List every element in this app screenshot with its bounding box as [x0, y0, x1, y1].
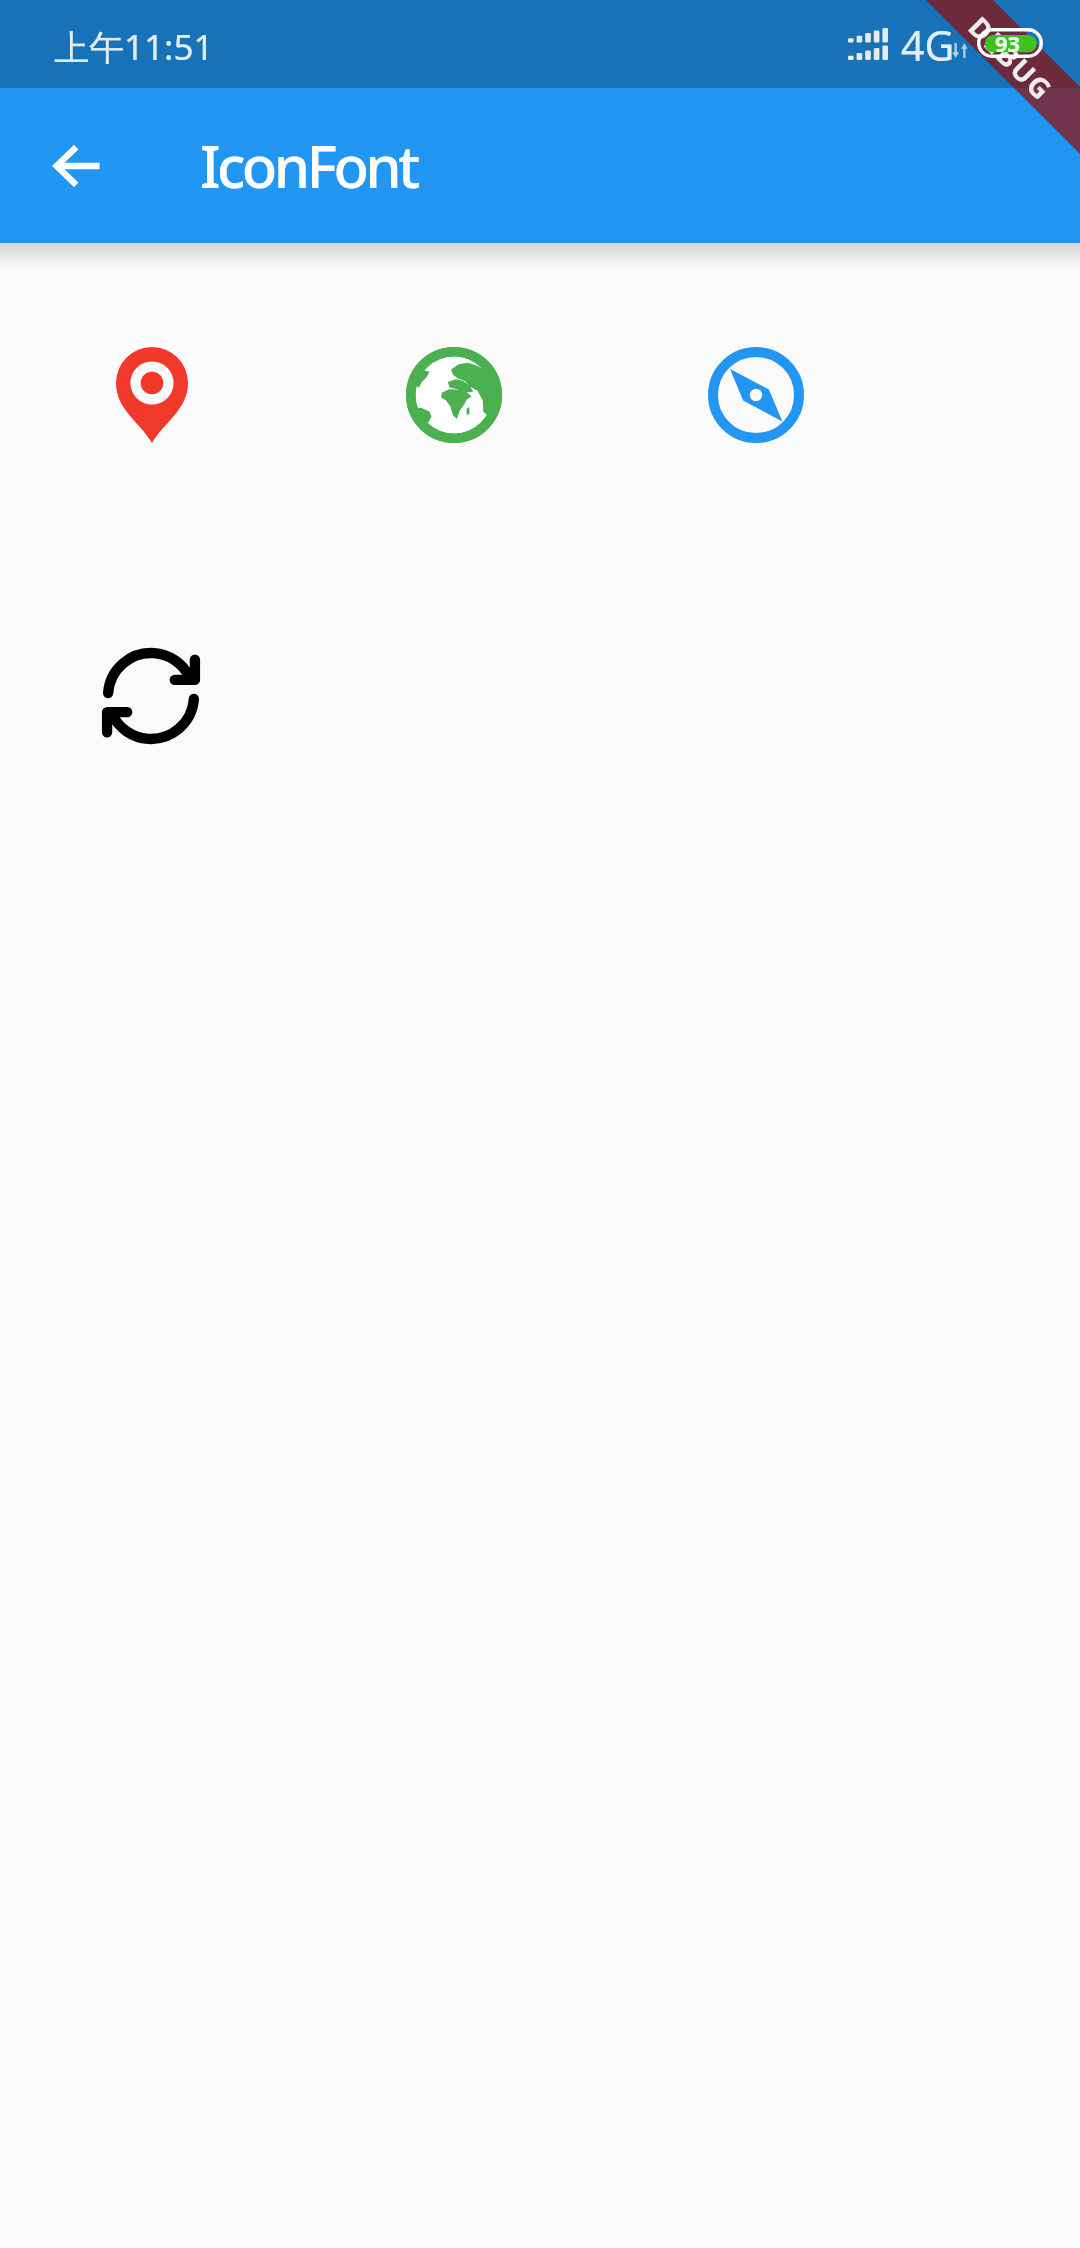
- button[interactable]: Back: [5, 94, 149, 238]
- button[interactable]: Refresh: [91, 636, 211, 756]
- button[interactable]: Location: [92, 335, 212, 455]
- staticText: 4G: [901, 17, 955, 73]
- staticText: 93: [995, 28, 1021, 58]
- button[interactable]: Compass: [696, 335, 816, 455]
- button[interactable]: Globe: [394, 335, 514, 455]
- staticText: IconFont: [200, 126, 417, 205]
- staticText: 上午11:51: [54, 23, 214, 71]
